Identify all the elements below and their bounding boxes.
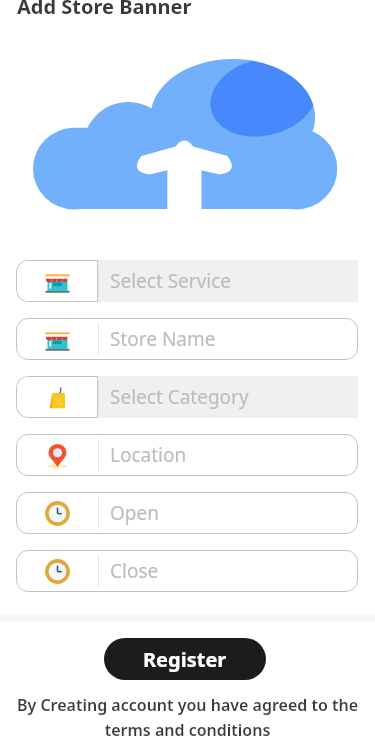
staticText: Select Category [110, 384, 249, 410]
button[interactable]: Select Service [16, 260, 358, 302]
button[interactable]: Upload store banner [0, 25, 375, 225]
staticText: Location [110, 442, 187, 468]
staticText: Select Service [110, 268, 232, 294]
button[interactable]: Location [16, 434, 358, 476]
button[interactable]: Open [16, 492, 358, 534]
staticText: Close [110, 558, 159, 584]
button[interactable]: Select Category [16, 376, 358, 418]
staticText: Store Name [110, 326, 216, 352]
staticText: Open [110, 500, 159, 526]
button[interactable]: Register [104, 638, 266, 680]
staticText: Register [143, 646, 227, 673]
staticText: Add Store Banner [17, 0, 192, 20]
button[interactable]: Close [16, 550, 358, 592]
button[interactable]: Store Name [16, 318, 358, 360]
staticText: By Creating account you have agreed to t… [5, 694, 370, 740]
